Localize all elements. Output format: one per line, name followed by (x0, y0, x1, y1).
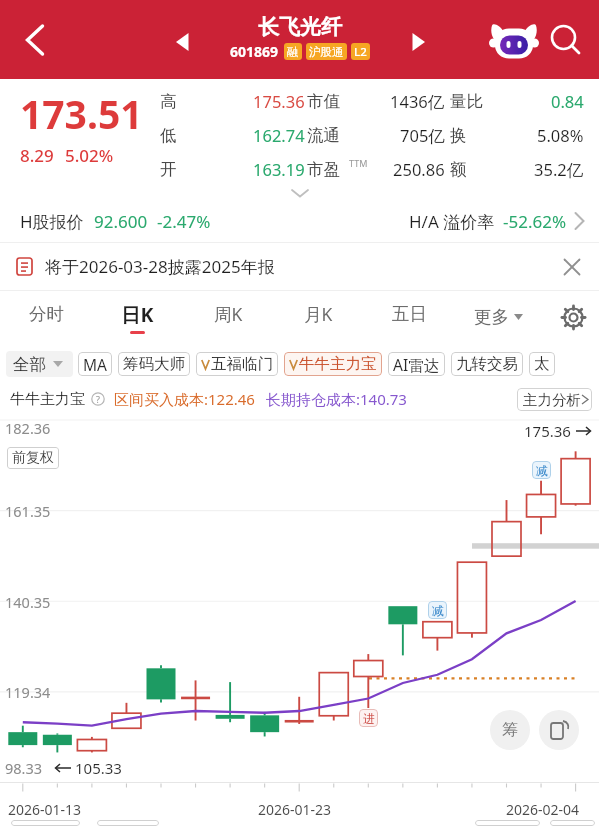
staticText: 五日 (392, 303, 427, 325)
staticText: 175.36 (524, 421, 571, 441)
button[interactable]: 前复权 (7, 447, 59, 469)
staticText: 市盈 (307, 159, 340, 180)
staticText: 筹 (502, 720, 518, 740)
button[interactable]: 将于2026-03-28披露2025年报 (0, 243, 599, 290)
staticText: 减 (432, 603, 444, 618)
button[interactable]: 分时 (3, 291, 89, 343)
staticText: 区间买入成本:122.46 (114, 389, 255, 409)
button[interactable]: Next stock (400, 24, 436, 60)
staticText: 前复权 (12, 449, 54, 467)
staticText: 低 (160, 125, 177, 146)
staticText: 减 (536, 463, 548, 478)
staticText: 250.86 (393, 158, 445, 180)
button[interactable]: 筹 (490, 710, 530, 750)
staticText: 98.33 (5, 758, 43, 778)
button[interactable]: 主力分析 (517, 388, 592, 411)
button[interactable]: 筹码大师 (118, 352, 190, 376)
staticText: 163.19 (253, 158, 305, 180)
staticText: 五福临门 (211, 354, 273, 374)
button[interactable]: Indicator (97, 820, 159, 826)
staticText: 九转交易 (456, 354, 518, 374)
staticText: 601869 (230, 42, 279, 61)
staticText: 日K (121, 301, 154, 328)
button[interactable]: 全部 (6, 351, 73, 377)
staticText: 月K (304, 302, 333, 326)
button[interactable]: Back (8, 13, 62, 67)
button[interactable]: 更多 (462, 291, 534, 343)
staticText: 2026-01-23 (258, 800, 332, 819)
staticText: 筹码大师 (123, 354, 185, 374)
staticText: 将于2026-03-28披露2025年报 (45, 255, 275, 278)
button[interactable]: H股报价 (0, 200, 599, 242)
button[interactable]: Rotate to fullscreen (539, 710, 579, 750)
staticText: 沪股通 (309, 45, 344, 59)
button[interactable]: AI雷达 (388, 352, 445, 376)
staticText: 更多 (474, 306, 509, 328)
button[interactable]: 牛牛主力宝 (284, 352, 382, 376)
button[interactable]: Indicator (475, 820, 540, 826)
staticText: 主力分析 (523, 391, 581, 409)
button[interactable]: Search (541, 15, 591, 65)
staticText: L2 (354, 44, 367, 60)
staticText: 1436亿 (390, 90, 445, 113)
button[interactable]: AI assistant (489, 15, 539, 65)
button[interactable]: Chart settings (548, 291, 598, 343)
staticText: 105.33 (75, 758, 122, 778)
staticText: 市值 (307, 91, 340, 112)
staticText: 流通 (307, 125, 340, 146)
staticText: 92.600 (94, 210, 148, 233)
staticText: 2026-01-13 (8, 800, 82, 819)
staticText: H/A 溢价率 (409, 210, 495, 233)
staticText: 长期持仓成本:140.73 (266, 389, 407, 409)
staticText: 长飞光纤 (258, 14, 342, 40)
button[interactable]: Indicator (550, 820, 595, 826)
staticText: 173.51 (20, 87, 143, 140)
staticText: 换 (450, 125, 467, 146)
staticText: 进 (363, 711, 375, 726)
staticText: H股报价 (20, 210, 84, 233)
staticText: AI雷达 (393, 354, 440, 375)
staticText: 全部 (13, 354, 46, 375)
button[interactable]: 月K (275, 291, 361, 343)
staticText: -2.47% (157, 210, 211, 233)
staticText: 161.35 (5, 501, 51, 521)
button[interactable]: MA (78, 352, 112, 376)
button[interactable]: Close (557, 252, 587, 282)
staticText: 2026-02-04 (506, 800, 580, 819)
staticText: 119.34 (5, 682, 51, 702)
button[interactable]: Previous stock (165, 24, 201, 60)
staticText: 5.08% (537, 124, 584, 146)
button[interactable]: 周K (185, 291, 271, 343)
staticText: 5.02% (65, 144, 114, 167)
staticText: 分时 (29, 303, 64, 325)
staticText: 35.2亿 (534, 158, 584, 181)
staticText: 开 (160, 159, 177, 180)
staticText: 175.36 (253, 90, 305, 112)
button[interactable]: 日K (94, 291, 180, 343)
staticText: 0.84 (551, 90, 584, 112)
staticText: -52.62% (503, 210, 567, 233)
button[interactable]: 五日 (366, 291, 452, 343)
staticText: TTM (349, 157, 368, 169)
staticText: 182.36 (5, 418, 51, 438)
staticText: 705亿 (400, 124, 445, 147)
staticText: 162.74 (253, 124, 305, 146)
button[interactable]: 五福临门 (196, 352, 278, 376)
staticText: 额 (450, 159, 467, 180)
staticText: 140.35 (5, 592, 51, 612)
staticText: 牛牛主力宝 (10, 390, 85, 409)
button[interactable]: 太 (529, 352, 555, 376)
staticText: 周K (214, 302, 243, 326)
staticText: 太 (534, 354, 550, 374)
staticText: 8.29 (20, 144, 54, 167)
button[interactable]: Indicator (11, 820, 80, 826)
staticText: ? (96, 393, 100, 405)
button[interactable]: 九转交易 (451, 352, 523, 376)
staticText: 融 (287, 45, 299, 59)
staticText: 高 (160, 91, 177, 112)
staticText: 牛牛主力宝 (299, 354, 377, 374)
staticText: MA (83, 354, 107, 375)
staticText: 量比 (450, 91, 483, 112)
